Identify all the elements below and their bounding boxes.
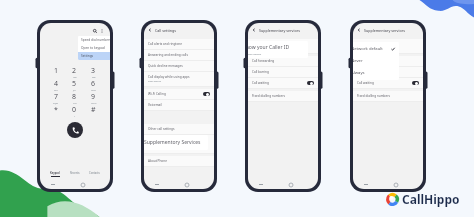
button[interactable]: Keypad	[50, 171, 60, 177]
staticText: Never	[353, 58, 395, 64]
button[interactable]: 4	[47, 79, 65, 92]
button[interactable]: Call barring	[353, 67, 423, 77]
staticText: About Phone	[148, 159, 167, 163]
staticText: *	[54, 105, 58, 115]
staticText: Keypad	[50, 171, 60, 175]
button[interactable]: Call alerts and ringtone	[144, 39, 214, 49]
button[interactable]: Back	[147, 27, 153, 33]
staticText: Contacts	[89, 171, 100, 175]
button[interactable]: More options	[99, 28, 105, 34]
button[interactable]: Always	[353, 67, 399, 79]
button[interactable]: 8	[65, 92, 84, 105]
staticText: Supplementary services	[364, 28, 405, 33]
button[interactable]: Call waiting	[248, 78, 318, 88]
button[interactable]: Quick decline messages	[144, 61, 214, 71]
staticText: Call forwarding	[252, 59, 275, 63]
staticText: Network default	[252, 47, 268, 50]
button[interactable]: Search	[92, 28, 98, 34]
button[interactable]: 7	[47, 92, 65, 105]
staticText: Call barring	[357, 70, 374, 74]
staticText: Wi-Fi Calling	[148, 92, 166, 96]
button[interactable]: Call forwarding	[353, 56, 423, 66]
staticText: JKL	[73, 89, 76, 92]
staticText: Quick decline messages	[148, 64, 183, 68]
button[interactable]: Wi-Fi Calling	[144, 89, 214, 99]
staticText: Show your Caller ID	[252, 42, 281, 46]
staticText: DEF	[92, 76, 96, 79]
button[interactable]: Recents	[70, 171, 80, 175]
staticText: Open to keypad	[81, 46, 105, 50]
button[interactable]: Call barring	[248, 67, 318, 77]
button[interactable]: #	[84, 105, 103, 118]
button[interactable]: Back	[251, 27, 257, 33]
staticText: Call waiting	[357, 81, 374, 85]
button[interactable]: Call display while using apps	[144, 72, 214, 86]
button[interactable]: Call waiting	[353, 78, 423, 88]
staticText: 7	[54, 92, 59, 102]
button[interactable]: About Phone	[144, 156, 214, 166]
button[interactable]: Open to keypad	[78, 44, 110, 52]
staticText: Fixed dialling numbers	[252, 94, 286, 98]
staticText: Privacy	[148, 137, 157, 141]
button[interactable]: Back	[356, 27, 362, 33]
staticText: CallHippo	[402, 191, 460, 207]
button[interactable]: Show your Caller ID	[248, 39, 318, 53]
staticText: 4	[54, 79, 59, 89]
staticText: Speed dial numbers	[81, 38, 110, 42]
button[interactable]: Settings	[78, 52, 110, 60]
button[interactable]: Call	[67, 122, 83, 138]
staticText: Supplementary services	[259, 28, 300, 33]
button[interactable]: Supplementory Services	[144, 135, 208, 150]
staticText: Call display while using apps	[148, 75, 190, 79]
staticText: Show your Caller ID	[248, 44, 290, 51]
button[interactable]: 5	[65, 79, 84, 92]
button[interactable]: 3	[84, 66, 103, 79]
staticText: Network default	[248, 52, 262, 55]
button[interactable]: Speed dial numbers	[78, 36, 110, 44]
staticText: Network default	[353, 46, 391, 52]
staticText: ABC	[73, 76, 77, 79]
button[interactable]: Permissions	[144, 143, 214, 153]
staticText: MNO	[91, 89, 96, 92]
button[interactable]: Network default	[353, 43, 399, 55]
button[interactable]: Contacts	[89, 171, 100, 175]
staticText: GHI	[54, 89, 58, 92]
staticText: Supplementory Services	[144, 139, 201, 146]
button[interactable]: Fixed dialling numbers	[248, 91, 318, 101]
staticText: 2	[72, 66, 77, 76]
staticText: Call alerts and ringtone	[148, 42, 182, 46]
button[interactable]: 0	[65, 105, 84, 118]
button[interactable]: Fixed dialling numbers	[353, 91, 423, 101]
button[interactable]: Show your Caller ID	[248, 41, 308, 58]
button[interactable]: 2	[65, 66, 84, 79]
button[interactable]: Answering and ending calls	[144, 50, 214, 60]
button[interactable]: Call forwarding	[248, 56, 318, 66]
staticText: 6	[91, 79, 96, 89]
staticText: +	[74, 115, 76, 118]
staticText: WXYZ	[91, 102, 97, 105]
button[interactable]: 1	[47, 66, 65, 79]
button[interactable]: *	[47, 105, 65, 118]
button[interactable]: 9	[84, 92, 103, 105]
staticText: Other call settings	[148, 127, 175, 131]
staticText: Always	[353, 70, 395, 76]
button[interactable]: Other call settings	[144, 124, 214, 134]
staticText: 1	[54, 66, 59, 76]
staticText: Network default	[357, 47, 373, 50]
staticText: #	[91, 105, 96, 115]
staticText: Recents	[70, 171, 80, 175]
staticText: 0	[72, 105, 77, 115]
button[interactable]: Voicemail	[144, 100, 214, 110]
staticText: Fixed dialling numbers	[357, 94, 391, 98]
staticText: Call barring	[252, 70, 269, 74]
staticText: 9	[91, 92, 96, 102]
button[interactable]: CallHippo	[386, 191, 460, 207]
button[interactable]: Show your Caller ID	[353, 39, 423, 53]
button[interactable]: Never	[353, 55, 399, 67]
button[interactable]: 6	[84, 79, 103, 92]
